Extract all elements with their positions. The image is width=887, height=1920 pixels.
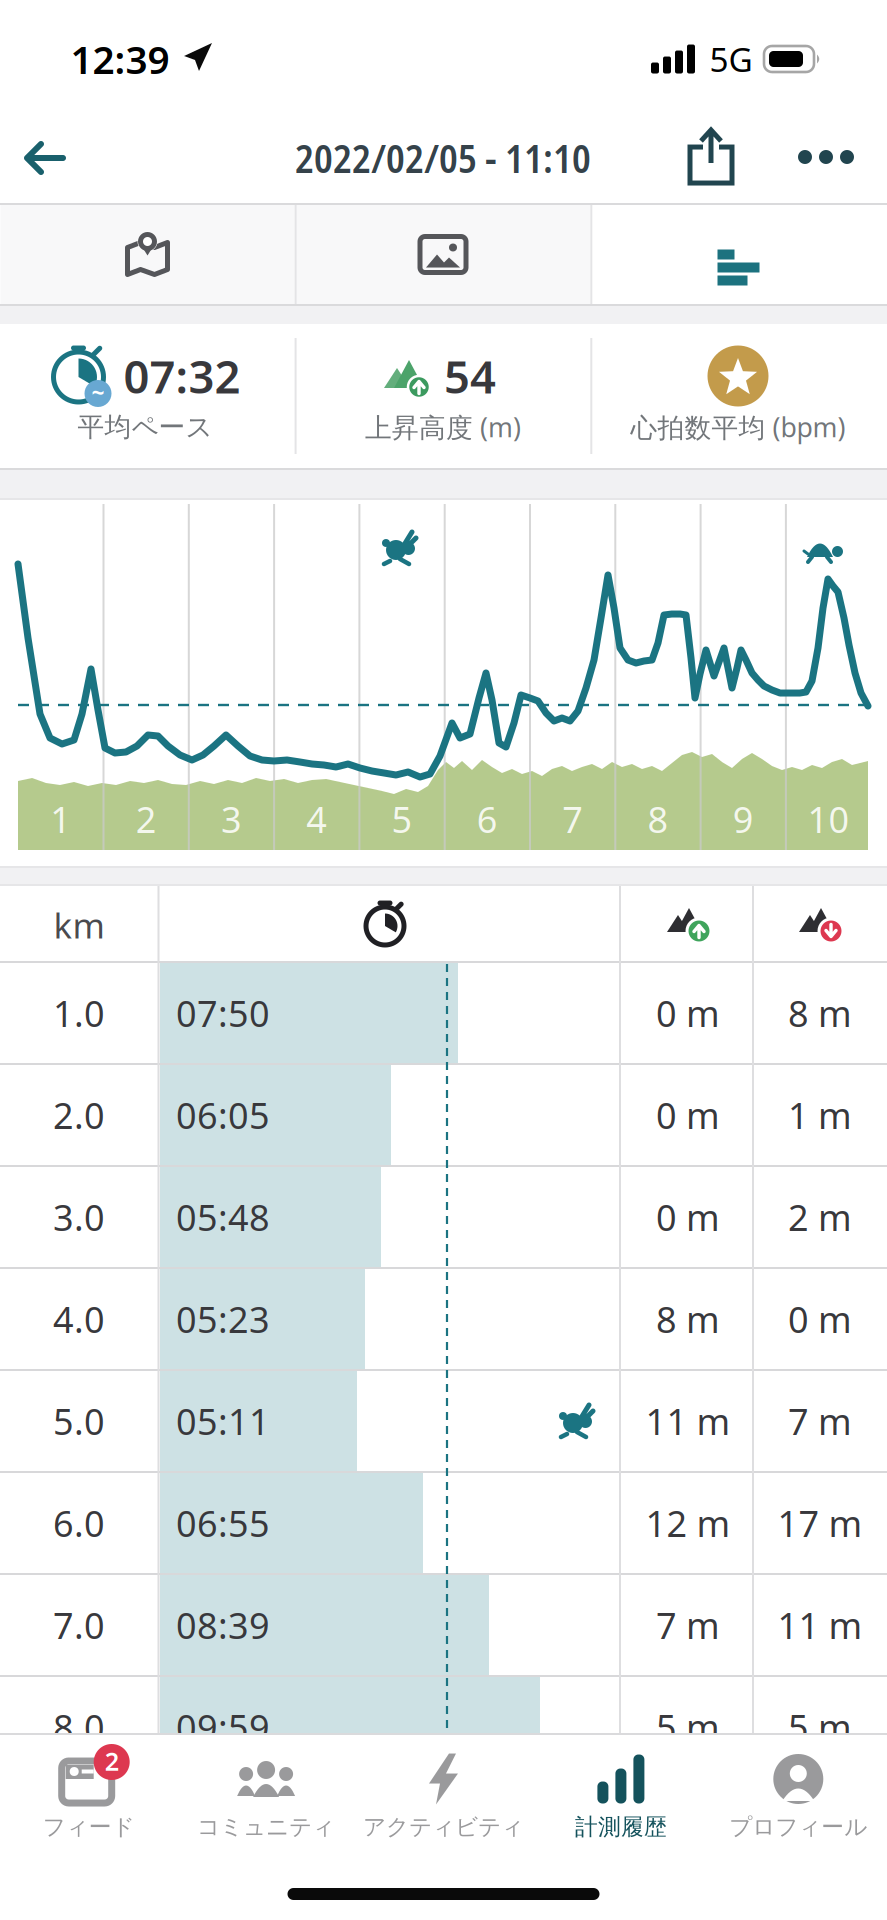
staticText: コミュニティ [197, 1813, 335, 1841]
staticText: 8 m [656, 1295, 720, 1343]
staticText: 07:32 [123, 346, 240, 406]
staticText: 6.0 [53, 1499, 105, 1547]
staticText: 0 m [656, 1091, 720, 1139]
staticText: 8 [647, 795, 668, 843]
button[interactable]: プロフィール [710, 1735, 887, 1880]
staticText: 05:23 [176, 1295, 270, 1343]
staticText: 計測履歴 [575, 1813, 667, 1841]
staticText: 3 [221, 795, 242, 843]
button[interactable]: 計測履歴 [532, 1735, 710, 1880]
button[interactable]: Share [679, 119, 743, 195]
staticText: フィード [43, 1813, 135, 1841]
button[interactable]: Map [0, 205, 294, 304]
staticText: 5G [709, 37, 752, 81]
staticText: 0 m [656, 1193, 720, 1241]
staticText: 2022/02/05 - 11:10 [295, 132, 591, 184]
staticText: km [53, 902, 104, 948]
button[interactable]: フィード [0, 1735, 177, 1880]
staticText: 平均ペース [77, 411, 212, 443]
staticText: 心拍数平均 (bpm) [630, 409, 845, 445]
staticText: 11 m [777, 1601, 862, 1649]
staticText: 1 [50, 795, 71, 843]
staticText: 06:55 [176, 1499, 270, 1547]
staticText: 5 m [656, 1703, 720, 1751]
staticText: 54 [444, 346, 496, 406]
staticText: 3.0 [53, 1193, 105, 1241]
staticText: 1 m [788, 1091, 852, 1139]
staticText: 08:39 [176, 1601, 270, 1649]
staticText: 9 [733, 795, 754, 843]
staticText: 5.0 [53, 1397, 105, 1445]
staticText: 17 m [777, 1499, 862, 1547]
staticText: 7 m [788, 1397, 852, 1445]
staticText: 07:50 [176, 989, 270, 1037]
staticText: 2 [136, 795, 157, 843]
staticText: 5 m [788, 1703, 852, 1751]
staticText: 05:11 [176, 1397, 270, 1445]
staticText: 4 [306, 795, 327, 843]
button[interactable]: More [786, 138, 866, 176]
staticText: プロフィール [729, 1813, 867, 1841]
button[interactable]: Photos [296, 205, 590, 304]
staticText: 06:05 [176, 1091, 270, 1139]
staticText: 0 m [656, 989, 720, 1037]
staticText: 2 [105, 1744, 119, 1778]
staticText: 2 m [788, 1193, 852, 1241]
staticText: 4.0 [53, 1295, 105, 1343]
staticText: 11 m [645, 1397, 730, 1445]
staticText: 6 [477, 795, 498, 843]
staticText: 7.0 [53, 1601, 105, 1649]
button[interactable]: Back [10, 129, 80, 187]
button[interactable]: Charts [591, 205, 885, 304]
staticText: ~ [91, 377, 104, 407]
button[interactable]: アクティビティ [355, 1735, 532, 1880]
staticText: 10 [808, 795, 850, 843]
staticText: 7 [562, 795, 583, 843]
staticText: 8.0 [53, 1703, 105, 1751]
staticText: 上昇高度 (m) [365, 409, 521, 445]
staticText: 0 m [788, 1295, 852, 1343]
staticText: 12:39 [70, 33, 169, 85]
staticText: 09:59 [176, 1703, 270, 1751]
button[interactable]: コミュニティ [177, 1735, 355, 1880]
staticText: 2.0 [53, 1091, 105, 1139]
staticText: 5 [391, 795, 412, 843]
staticText: 05:48 [176, 1193, 270, 1241]
staticText: 8 m [788, 989, 852, 1037]
staticText: アクティビティ [363, 1813, 524, 1841]
staticText: 1.0 [53, 989, 105, 1037]
staticText: 7 m [656, 1601, 720, 1649]
staticText: 12 m [645, 1499, 730, 1547]
